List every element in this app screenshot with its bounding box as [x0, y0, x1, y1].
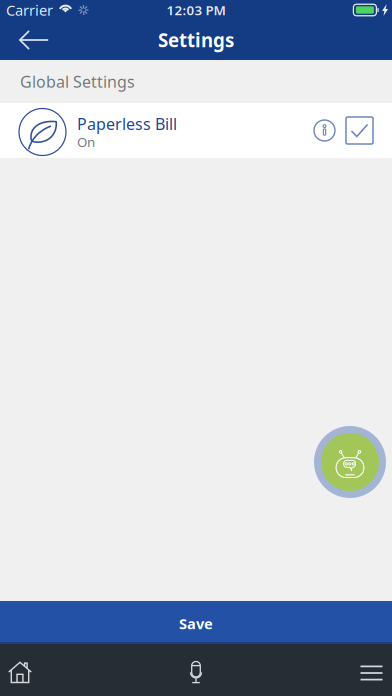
- button[interactable]: Back: [0, 20, 62, 60]
- staticText: On: [77, 133, 95, 151]
- button[interactable]: Menu: [330, 644, 392, 696]
- staticText: Settings: [158, 28, 234, 52]
- button[interactable]: Home: [0, 644, 62, 696]
- staticText: Save: [179, 614, 213, 633]
- staticText: Global Settings: [20, 71, 135, 92]
- button[interactable]: Paperless Bill: [0, 103, 392, 158]
- button[interactable]: Chat assistant: [314, 426, 386, 498]
- staticText: 12:03 PM: [166, 1, 225, 19]
- staticText: Carrier: [6, 0, 53, 20]
- button[interactable]: Voice: [159, 644, 233, 696]
- button[interactable]: Save: [0, 601, 392, 644]
- staticText: Paperless Bill: [77, 113, 177, 134]
